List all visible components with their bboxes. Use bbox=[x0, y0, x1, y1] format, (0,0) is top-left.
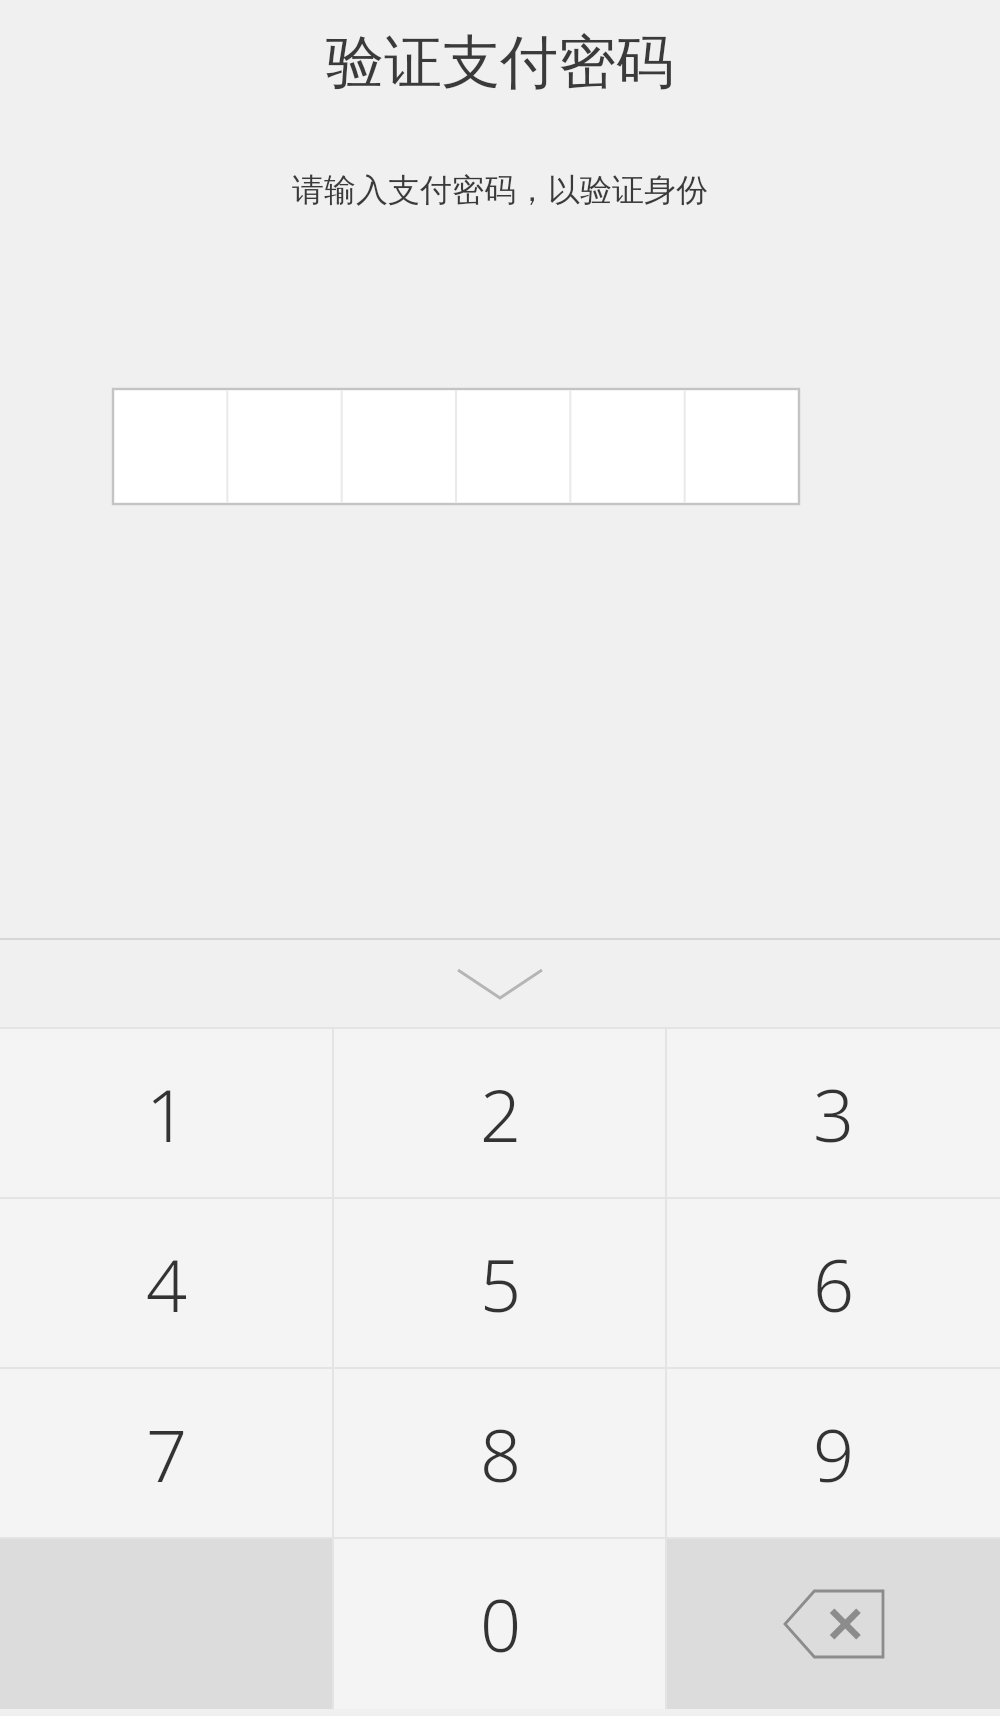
staticText: 5 bbox=[480, 1235, 522, 1333]
button[interactable]: Hide keyboard bbox=[0, 940, 1000, 1027]
button[interactable]: 7 bbox=[0, 1369, 334, 1539]
staticText: 0 bbox=[480, 1575, 522, 1673]
staticText: 7 bbox=[146, 1405, 188, 1503]
button[interactable]: 3 bbox=[667, 1029, 1000, 1199]
staticText: 6 bbox=[813, 1235, 855, 1333]
staticText: 1 bbox=[146, 1065, 188, 1163]
button[interactable]: 5 bbox=[334, 1199, 667, 1369]
staticText: 4 bbox=[146, 1235, 188, 1333]
staticText: 9 bbox=[813, 1405, 855, 1503]
button[interactable]: 1 bbox=[0, 1029, 334, 1199]
button[interactable]: 6 bbox=[667, 1199, 1000, 1369]
staticText: 2 bbox=[480, 1065, 522, 1163]
staticText: 3 bbox=[813, 1065, 855, 1163]
button[interactable]: Password field bbox=[113, 389, 799, 504]
staticText: 8 bbox=[480, 1405, 522, 1503]
button[interactable]: 2 bbox=[334, 1029, 667, 1199]
button[interactable]: 9 bbox=[667, 1369, 1000, 1539]
button[interactable]: 8 bbox=[334, 1369, 667, 1539]
button[interactable]: 4 bbox=[0, 1199, 334, 1369]
button[interactable]: 0 bbox=[334, 1539, 667, 1709]
staticText: 请输入支付密码，以验证身份 bbox=[0, 170, 1000, 210]
button[interactable]: Delete bbox=[667, 1539, 1000, 1709]
staticText: 验证支付密码 bbox=[0, 26, 1000, 99]
